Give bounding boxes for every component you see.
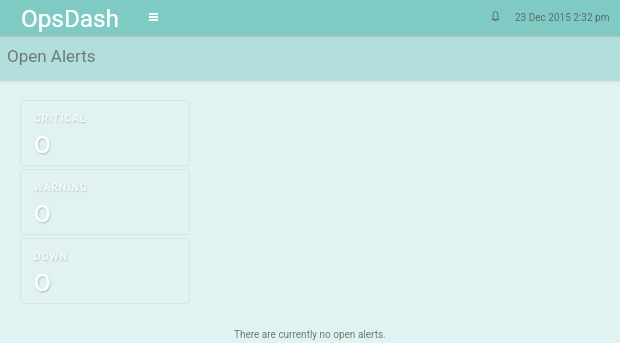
staticText: 0: [34, 268, 51, 297]
staticText: Open Alerts: [7, 46, 96, 66]
staticText: 23 Dec 2015 2:32 pm: [515, 12, 610, 24]
button[interactable]: Menu: [142, 6, 164, 28]
staticText: DOWN: [34, 251, 69, 263]
staticText: 0: [34, 199, 51, 228]
staticText: 0: [34, 130, 51, 159]
staticText: CRITICAL: [34, 113, 87, 125]
button[interactable]: WARNING: [20, 169, 190, 235]
button[interactable]: OpsDash: [21, 4, 119, 32]
staticText: WARNING: [34, 182, 88, 194]
button[interactable]: Notifications: [485, 6, 505, 26]
button[interactable]: DOWN: [20, 238, 190, 304]
staticText: There are currently no open alerts.: [234, 329, 386, 341]
button[interactable]: CRITICAL: [20, 100, 190, 166]
